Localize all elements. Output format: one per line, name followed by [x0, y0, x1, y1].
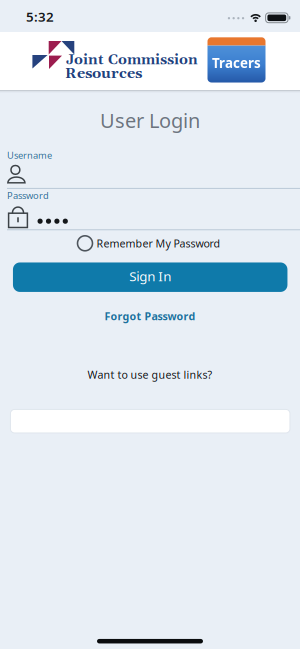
staticText: Username — [7, 149, 52, 161]
staticText: Forgot Password — [104, 309, 195, 323]
staticText: Tracers — [212, 54, 261, 72]
button[interactable]: Forgot Password — [104, 309, 195, 323]
button[interactable]: Remember My Password — [77, 236, 220, 251]
button[interactable]: Sign In — [13, 262, 287, 292]
staticText: Remember My Password — [96, 236, 220, 250]
staticText: User Login — [100, 107, 200, 134]
button[interactable]: Username — [0, 149, 300, 189]
button[interactable]: Password — [0, 189, 300, 230]
staticText: Want to use guest links? — [87, 367, 212, 382]
staticText: Joint Commission — [66, 51, 198, 69]
staticText: Resources — [65, 64, 142, 83]
staticText: Password — [7, 189, 49, 202]
button[interactable]: Guest link — [10, 409, 290, 433]
staticText: Sign In — [129, 267, 171, 285]
staticText: 5:32 — [26, 8, 54, 25]
